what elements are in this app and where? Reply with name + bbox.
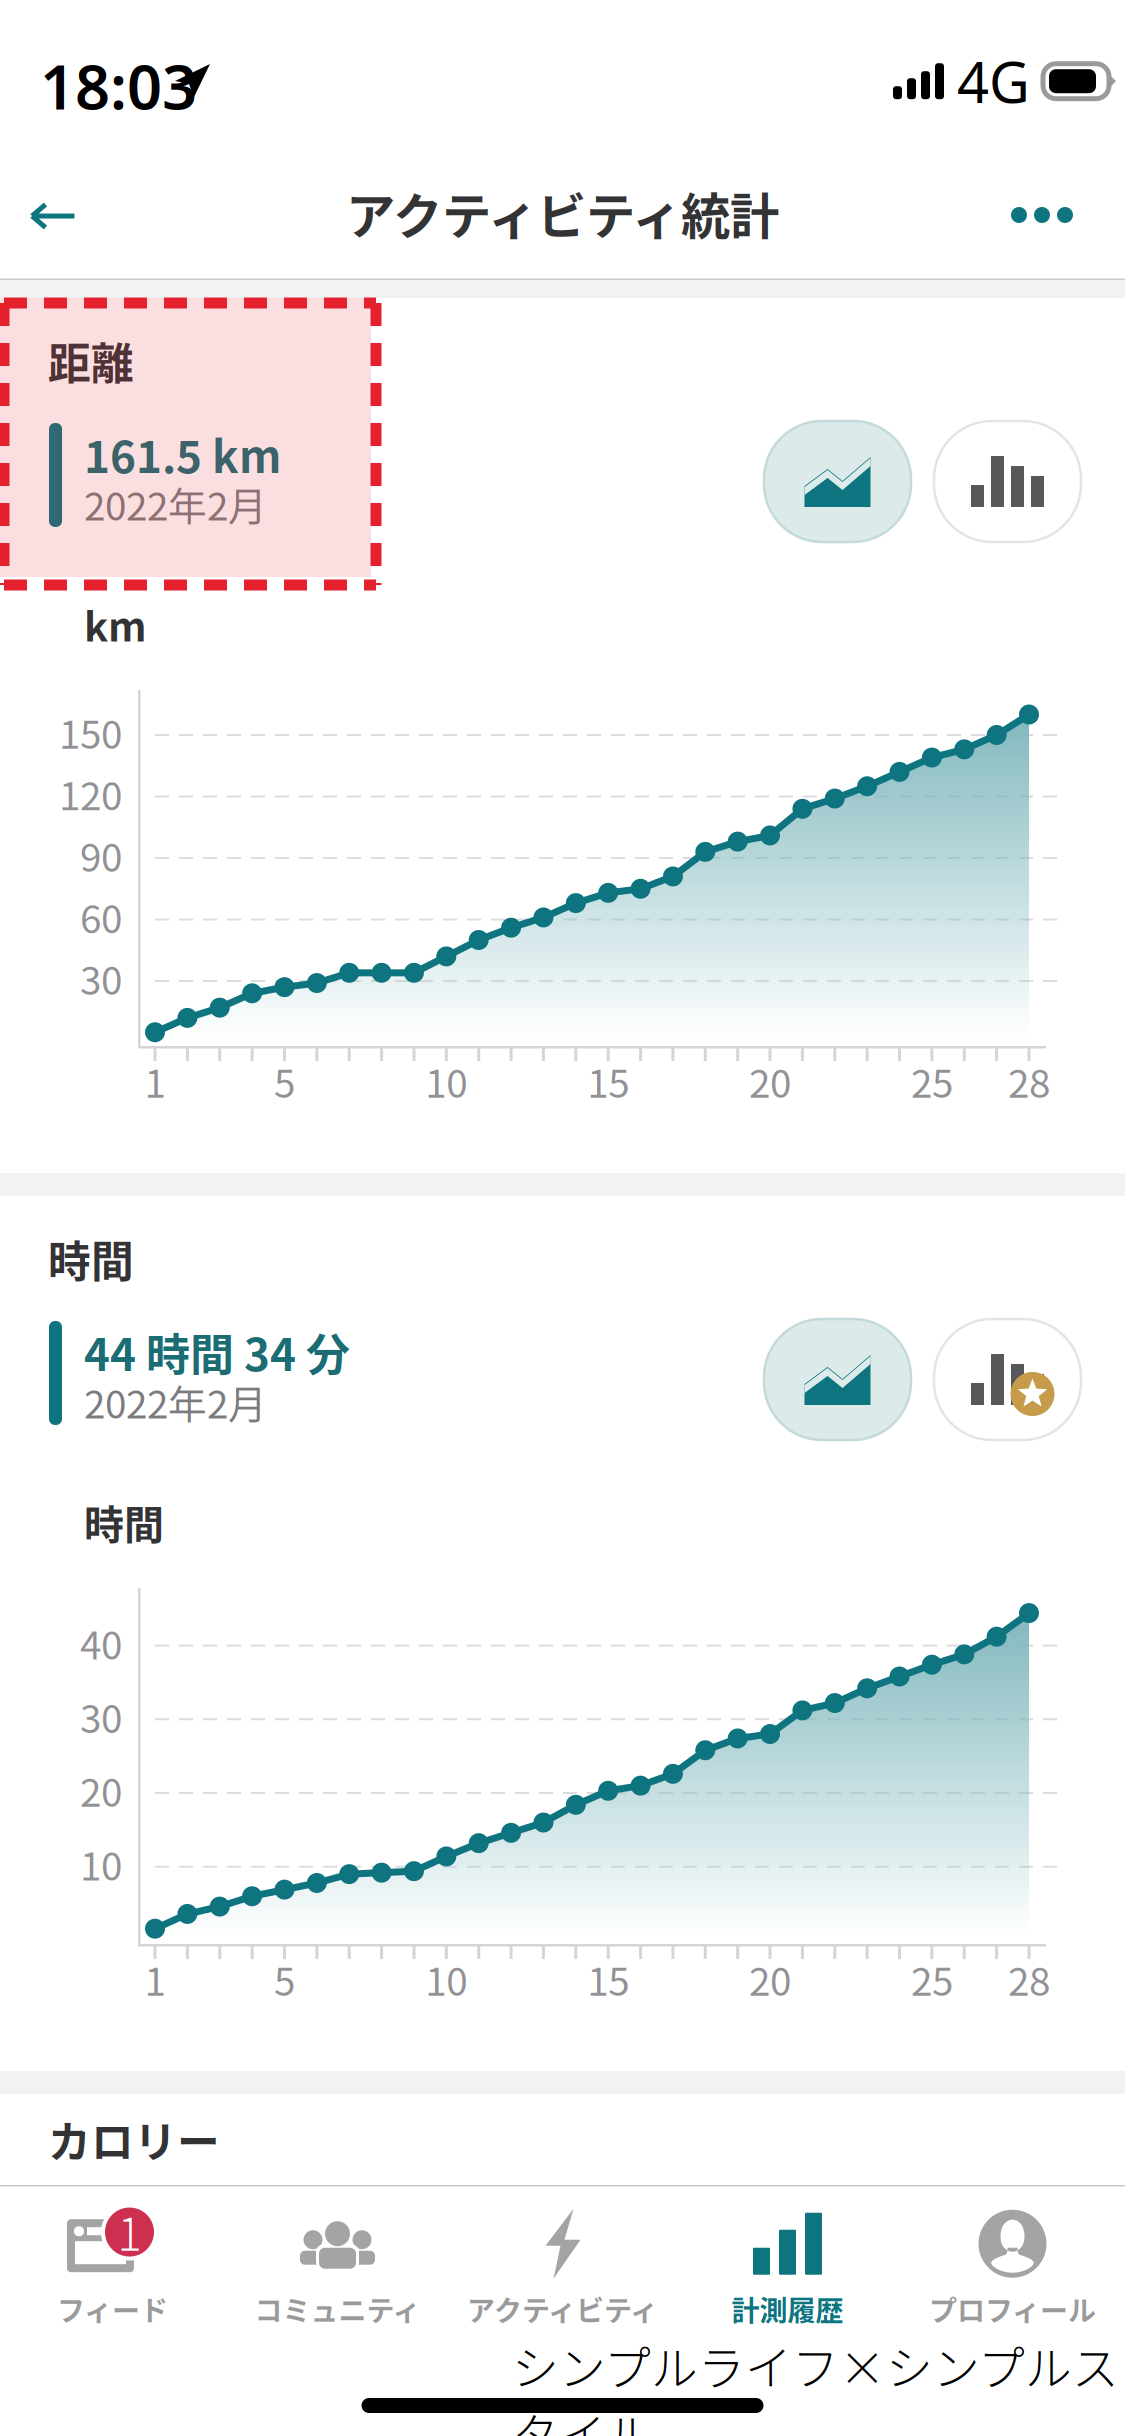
button[interactable]: 1 [0,2185,225,2353]
staticText: 20 [80,1762,122,1818]
staticText: 10 [80,1836,122,1892]
staticText: 5 [274,1951,295,2007]
staticText: 60 [80,888,122,944]
staticText: 10 [425,1053,467,1109]
staticText: 30 [80,1688,122,1744]
button[interactable]: Line chart [764,421,911,542]
staticText: 15 [587,1053,629,1109]
button[interactable]: 計測履歴 [675,2185,900,2353]
staticText: 28 [1008,1951,1050,2007]
staticText: 時間 [84,1493,164,1551]
staticText: 30 [80,950,122,1006]
staticText: 161.5 km [84,422,281,486]
staticText: アクティビティ [467,2289,658,2329]
button[interactable]: Bar chart [934,1319,1081,1440]
button[interactable]: アクティビティ [450,2185,675,2353]
staticText: 120 [59,765,122,821]
staticText: 1 [144,1053,165,1109]
staticText: カロリー [48,2109,220,2170]
button[interactable]: プロフィール [900,2185,1125,2353]
button[interactable]: コミュニティ [225,2185,450,2353]
staticText: 距離 [48,330,134,392]
staticText: 1 [117,2198,141,2264]
staticText: 4G [957,44,1030,118]
staticText: プロフィール [929,2289,1096,2329]
button[interactable]: Bar chart [934,421,1081,542]
staticText: 28 [1008,1053,1050,1109]
button[interactable]: Back [0,142,108,290]
staticText: km [84,595,147,653]
staticText: 40 [80,1614,122,1670]
staticText: 時間 [48,1228,134,1290]
staticText: 44 時間 34 分 [84,1320,350,1384]
staticText: 18:03 [40,45,197,126]
staticText: 25 [911,1951,953,2007]
staticText: 5 [274,1053,295,1109]
button[interactable]: More options [980,141,1104,289]
staticText: コミュニティ [254,2289,420,2329]
staticText: アクティビティ統計 [346,177,779,248]
staticText: 20 [749,1951,791,2007]
staticText: 2022年2月 [84,476,267,532]
staticText: 計測履歴 [731,2289,843,2329]
staticText: 25 [911,1053,953,1109]
staticText: シンプルライフ×シンプルスタイル [512,2331,1119,2436]
staticText: 15 [587,1951,629,2007]
button[interactable]: Line chart [764,1319,911,1440]
staticText: 150 [59,704,122,760]
staticText: 1 [144,1951,165,2007]
staticText: 90 [80,827,122,883]
staticText: 2022年2月 [84,1374,267,1430]
staticText: 10 [425,1951,467,2007]
staticText: 20 [749,1053,791,1109]
staticText: フィード [57,2289,168,2329]
